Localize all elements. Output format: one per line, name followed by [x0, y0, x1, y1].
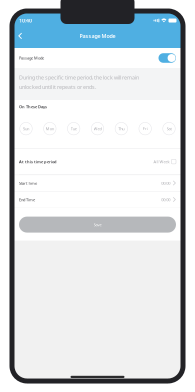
- staticText: 10:40: [19, 17, 32, 24]
- staticText: Sun: [23, 126, 29, 131]
- staticText: 00:00: [161, 180, 170, 186]
- staticText: Passage Mode: [79, 32, 115, 40]
- staticText: Fri: [143, 126, 148, 131]
- button[interactable]: Sat: [162, 122, 176, 135]
- button[interactable]: Save: [19, 217, 176, 233]
- staticText: During the specific time period, the loc…: [19, 74, 139, 81]
- staticText: Mon: [46, 126, 54, 131]
- staticText: unlocked until it repeats or ends.: [19, 83, 96, 91]
- button[interactable]: End Time: [12, 192, 183, 208]
- button[interactable]: Tue: [67, 122, 81, 135]
- button[interactable]: Back: [12, 28, 30, 43]
- staticText: Passage Mode: [19, 55, 44, 61]
- staticText: All Week: [153, 159, 169, 164]
- staticText: Tue: [71, 126, 77, 131]
- staticText: Wed: [93, 126, 101, 131]
- staticText: On These Days: [19, 104, 47, 109]
- button[interactable]: Wed: [90, 122, 104, 135]
- staticText: Sat: [166, 126, 171, 131]
- staticText: 00:00: [161, 197, 170, 202]
- button[interactable]: Thu: [114, 122, 128, 135]
- staticText: Thu: [118, 126, 124, 131]
- staticText: End Time: [19, 197, 35, 202]
- staticText: At this time period: [19, 159, 57, 164]
- staticText: Start Time: [19, 180, 37, 186]
- staticText: Save: [93, 222, 101, 227]
- button[interactable]: Fri: [138, 122, 152, 135]
- button[interactable]: Mon: [43, 122, 57, 135]
- button[interactable]: Start Time: [12, 175, 183, 191]
- button[interactable]: Sun: [19, 122, 33, 135]
